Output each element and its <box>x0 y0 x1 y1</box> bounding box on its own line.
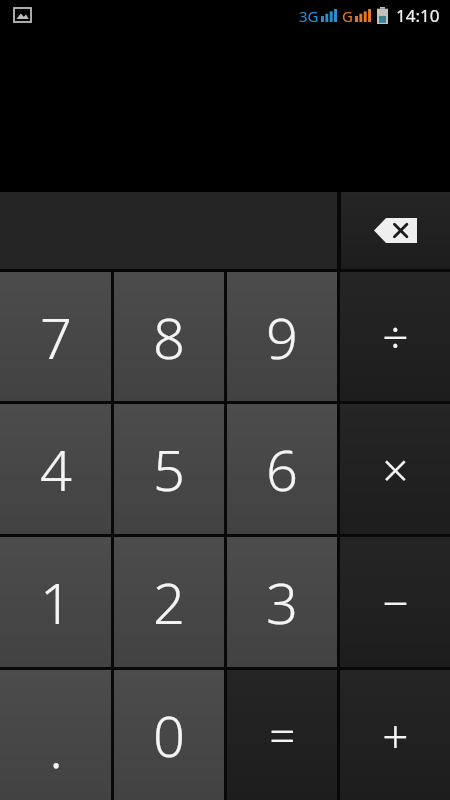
staticText: G <box>342 6 353 26</box>
button[interactable]: 0 <box>114 670 224 800</box>
staticText: 8 <box>153 299 185 375</box>
staticText: = <box>269 704 296 767</box>
staticText: 9 <box>266 299 298 375</box>
staticText: 7 <box>40 299 72 375</box>
staticText: 3G <box>299 6 319 26</box>
button[interactable]: − <box>340 537 450 667</box>
staticText: × <box>382 438 409 501</box>
button[interactable]: 2 <box>114 537 224 667</box>
button[interactable]: = <box>227 670 337 800</box>
staticText: 1 <box>40 564 72 640</box>
button[interactable]: Delete <box>341 192 450 269</box>
staticText: 5 <box>153 431 185 507</box>
button[interactable]: . <box>0 670 111 800</box>
button[interactable]: ÷ <box>340 272 450 401</box>
button[interactable]: 4 <box>0 404 111 534</box>
button[interactable]: 9 <box>227 272 337 401</box>
button[interactable]: × <box>340 404 450 534</box>
button[interactable]: + <box>340 670 450 800</box>
staticText: ÷ <box>382 305 409 368</box>
button[interactable]: 8 <box>114 272 224 401</box>
staticText: 6 <box>266 431 298 507</box>
button[interactable]: 6 <box>227 404 337 534</box>
button[interactable]: 7 <box>0 272 111 401</box>
staticText: 14:10 <box>396 4 440 27</box>
staticText: 3 <box>266 564 298 640</box>
staticText: − <box>382 571 409 634</box>
staticText: . <box>49 708 63 784</box>
button[interactable]: 1 <box>0 537 111 667</box>
staticText: 4 <box>40 431 72 507</box>
staticText: + <box>382 704 409 767</box>
button[interactable]: 5 <box>114 404 224 534</box>
staticText: 2 <box>153 564 185 640</box>
button[interactable]: 3 <box>227 537 337 667</box>
staticText: 0 <box>153 697 185 773</box>
